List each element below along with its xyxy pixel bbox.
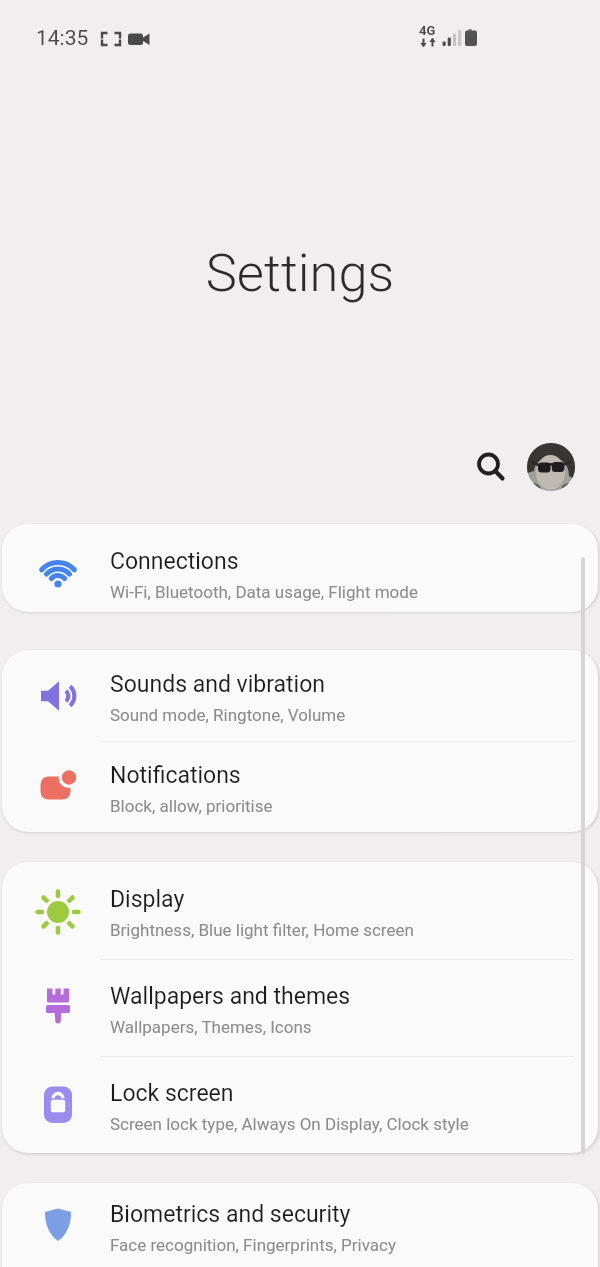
staticText: Sound mode, Ringtone, Volume [110, 705, 346, 725]
staticText: Brightness, Blue light filter, Home scre… [110, 920, 414, 940]
button[interactable] [527, 443, 575, 491]
staticText: Screen lock type, Always On Display, Clo… [110, 1114, 469, 1134]
staticText: 14:35 [36, 26, 89, 51]
button[interactable]: Notifications [2, 742, 598, 832]
staticText: Connections [110, 548, 239, 575]
button[interactable]: Display [2, 862, 598, 959]
staticText: Settings [0, 242, 600, 304]
staticText: Block, allow, prioritise [110, 796, 273, 816]
staticText: Face recognition, Fingerprints, Privacy [110, 1235, 396, 1255]
button[interactable]: Biometrics and security [2, 1183, 598, 1267]
staticText: 4G [419, 23, 436, 38]
staticText: Notifications [110, 762, 241, 789]
button[interactable]: Wallpapers and themes [2, 960, 598, 1056]
staticText: Wallpapers, Themes, Icons [110, 1017, 312, 1037]
staticText: Wallpapers and themes [110, 983, 351, 1010]
button[interactable]: Connections [2, 524, 598, 612]
staticText: Lock screen [110, 1080, 234, 1107]
staticText: Biometrics and security [110, 1201, 351, 1228]
staticText: Display [110, 886, 185, 913]
button[interactable] [468, 444, 510, 486]
button[interactable]: Sounds and vibration [2, 650, 598, 741]
staticText: Wi-Fi, Bluetooth, Data usage, Flight mod… [110, 582, 418, 602]
button[interactable]: Lock screen [2, 1057, 598, 1153]
staticText: Sounds and vibration [110, 671, 326, 698]
